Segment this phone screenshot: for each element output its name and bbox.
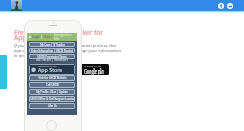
staticText: |: [41, 35, 43, 39]
staticText: Get Tracker | Reminders: [27, 58, 77, 62]
staticText: Immigration Life: [54, 33, 77, 41]
button[interactable]: Enter Information | USCIS Receipt Number: [29, 48, 75, 53]
staticText: Visit the USCIS Website: [38, 76, 67, 80]
button[interactable]: Home button: [46, 120, 57, 131]
staticText: Download on the: [38, 65, 57, 68]
button[interactable]: USCIS Processing Times: [29, 54, 75, 59]
button[interactable]: Get it on Google Play: [77, 64, 109, 75]
staticText: USCIS Processing Times: [37, 55, 67, 59]
button[interactable]: Call USCIS: [29, 82, 75, 88]
staticText: Google play: [84, 67, 104, 75]
button[interactable]: Visit the USCIS Website: [29, 75, 75, 81]
staticText: Like Us: [48, 104, 57, 108]
staticText: If you are going through an immigration …: [14, 42, 123, 58]
staticText: USCIS Office & Civil Surgeon Locator: [30, 97, 75, 101]
staticText: Call USCIS: [46, 83, 59, 87]
button[interactable]: My Profile - New | Update: [29, 89, 75, 95]
button[interactable]: Facebook: [218, 3, 224, 9]
button[interactable]: USCIS Office & Civil Surgeon Locator: [29, 96, 75, 102]
button[interactable]: Contact us: [0, 55, 7, 89]
staticText: Enter Information | USCIS Receipt Number: [29, 49, 75, 53]
staticText: My Case | N Tracker: [40, 43, 65, 47]
staticText: Free Immigration Tracker for Application…: [14, 28, 104, 42]
button[interactable]: Home logo: [11, 0, 22, 11]
button[interactable]: My Case | N Tracker: [29, 42, 75, 47]
staticText: Home: [44, 35, 53, 39]
button[interactable]: Like Us: [29, 103, 75, 109]
staticText: ANDROID APP ON: [84, 65, 102, 68]
staticText: App Store: [38, 66, 63, 74]
staticText: Login: [32, 35, 40, 39]
staticText: My Profile - New | Update: [36, 90, 68, 94]
button[interactable]: Download on the App Store: [29, 64, 75, 75]
button[interactable]: Twitter: [227, 3, 233, 9]
